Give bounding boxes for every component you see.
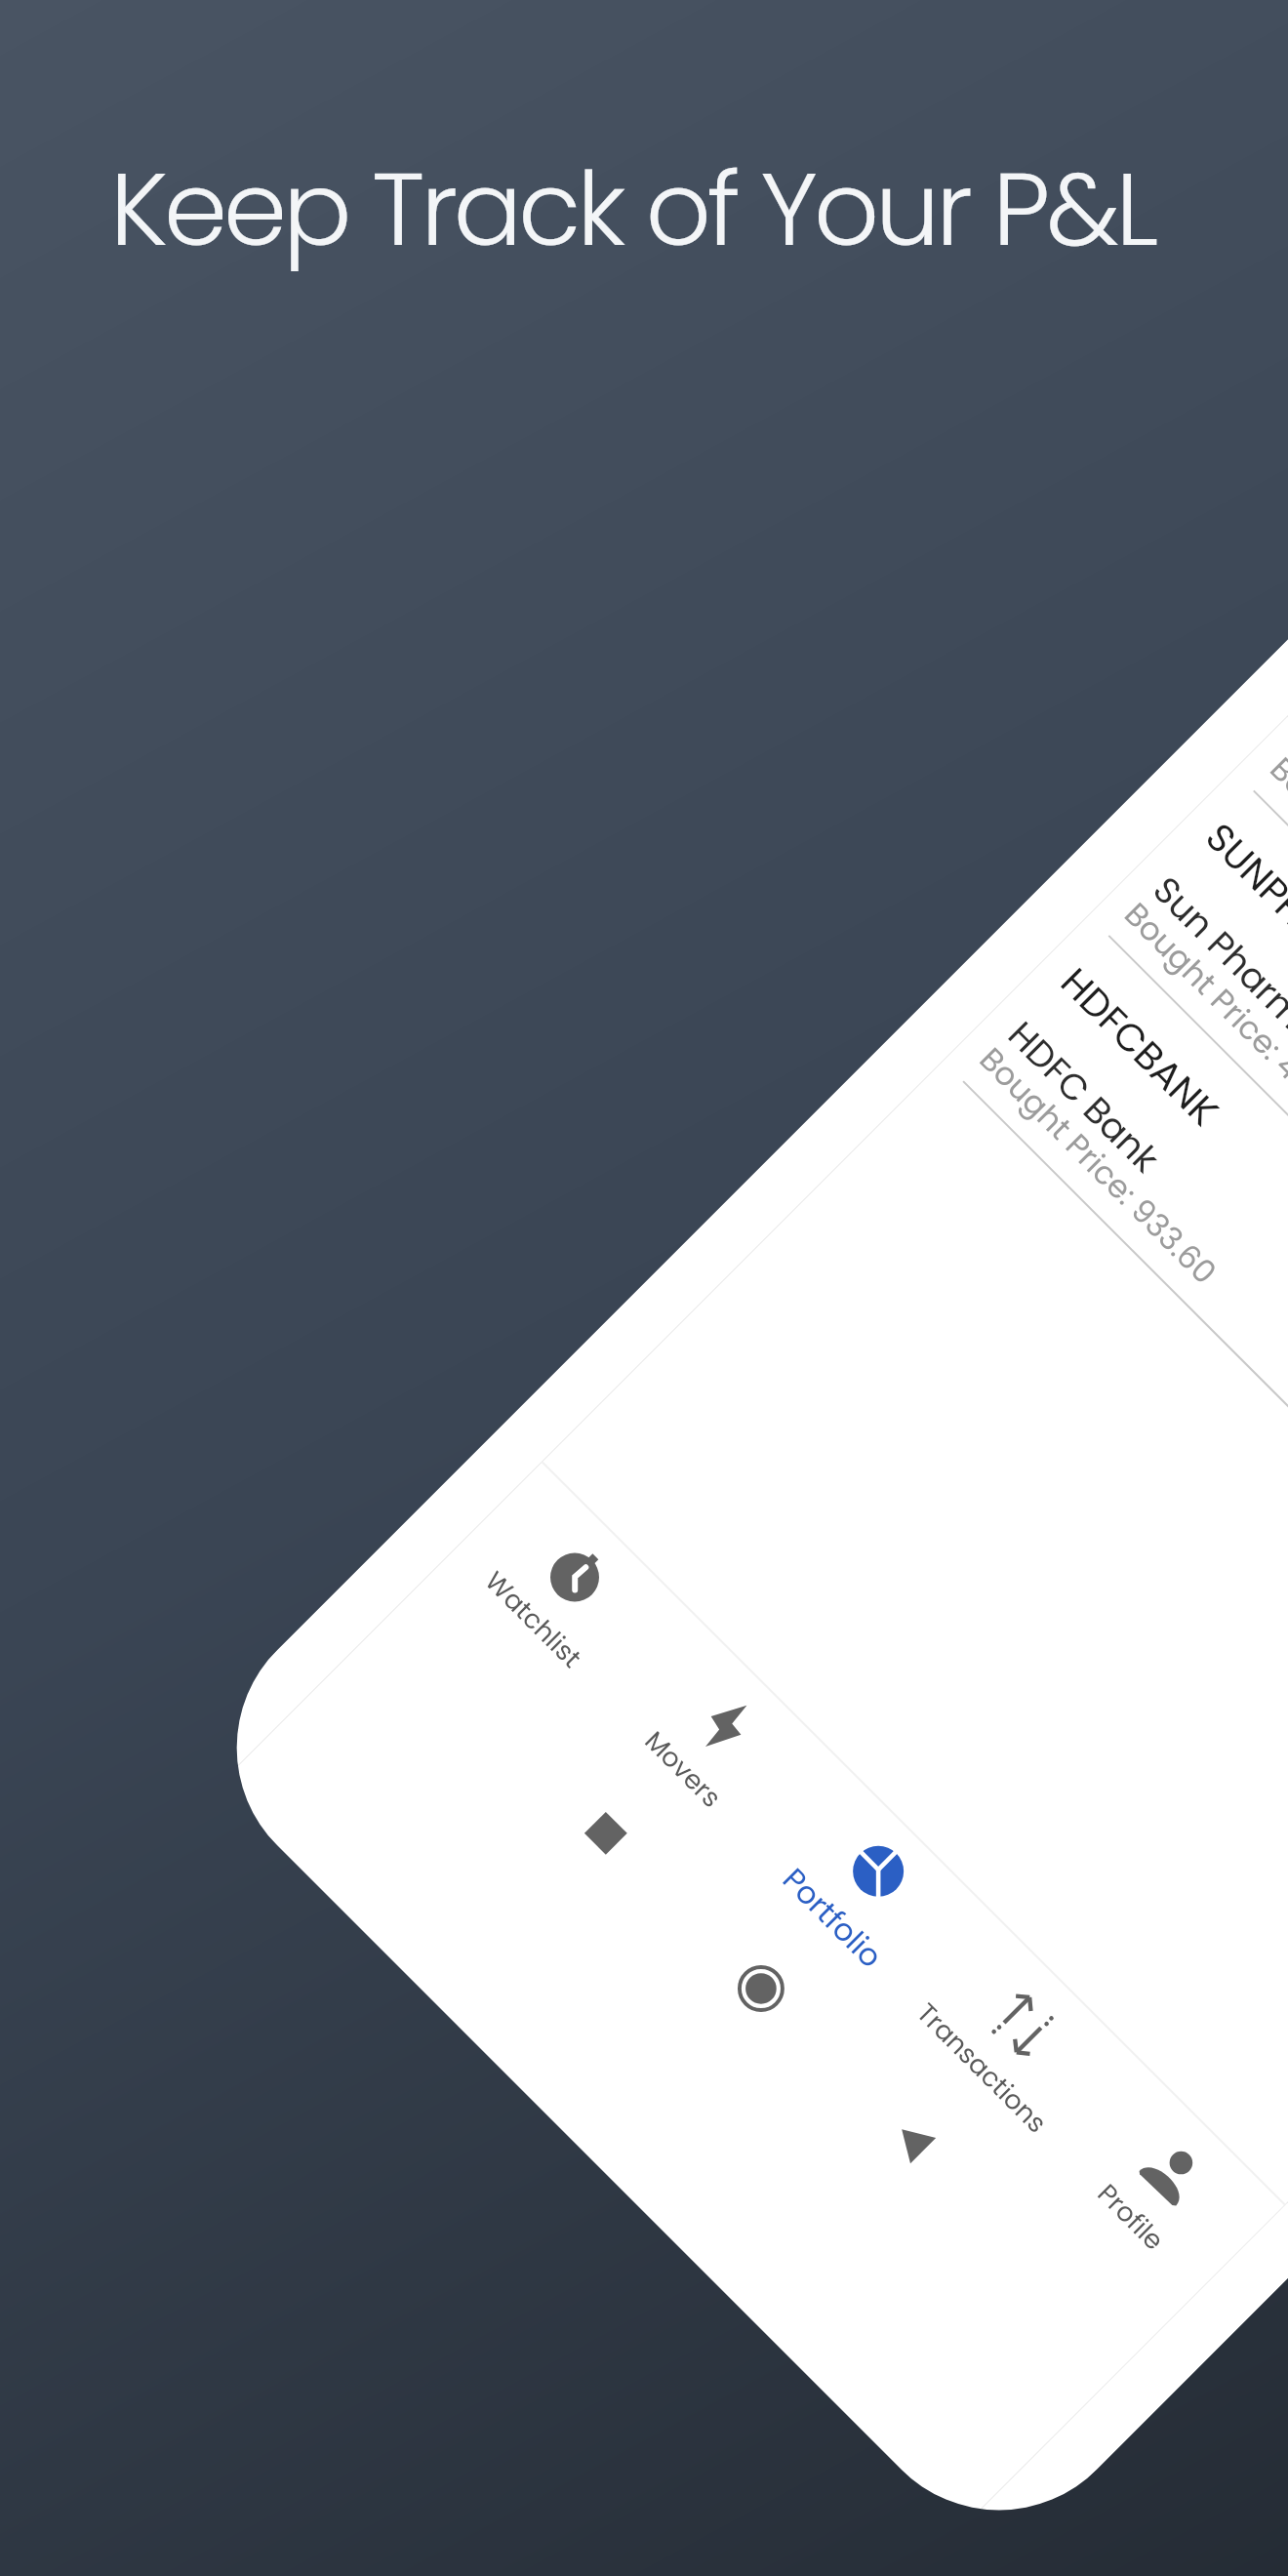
button[interactable]: Recents <box>551 1778 661 1888</box>
staticText: Profile <box>1042 2129 1218 2305</box>
staticText: Bought Price: 432.85 <box>1114 893 1288 1150</box>
staticText: Movers <box>595 1682 771 1857</box>
staticText: Watchlist <box>445 1532 621 1708</box>
button[interactable]: Profile <box>1008 2059 1288 2340</box>
staticText: Sun Pharmaceutical <box>1142 865 1288 1160</box>
button[interactable]: Portfolio <box>709 1760 990 2041</box>
button[interactable]: HDFCBANK <box>943 914 1288 1804</box>
staticText: Keep Track of Your P&L <box>0 138 1276 280</box>
button[interactable]: Back <box>860 2088 971 2198</box>
button[interactable]: Home <box>706 1933 816 2044</box>
staticText: Bought Price: 545.90 <box>1260 747 1288 1006</box>
staticText: HDFC Bank <box>997 1010 1171 1184</box>
staticText: Bought Price: 933.60 <box>969 1038 1226 1294</box>
staticText: HDFCBANK <box>1049 956 1230 1138</box>
staticText: SUNPHARMA <box>1194 811 1288 1015</box>
button[interactable]: Movers <box>560 1611 841 1892</box>
staticText: State Bank of India <box>1287 720 1288 994</box>
button[interactable]: SUNPHARMA <box>1088 769 1288 1659</box>
staticText: Portfolio <box>742 1828 922 2008</box>
button[interactable]: Transactions <box>859 1910 1140 2191</box>
staticText: Transactions <box>894 1980 1069 2156</box>
button[interactable]: SBIN <box>1234 624 1288 1513</box>
button[interactable]: Watchlist <box>411 1461 691 1742</box>
